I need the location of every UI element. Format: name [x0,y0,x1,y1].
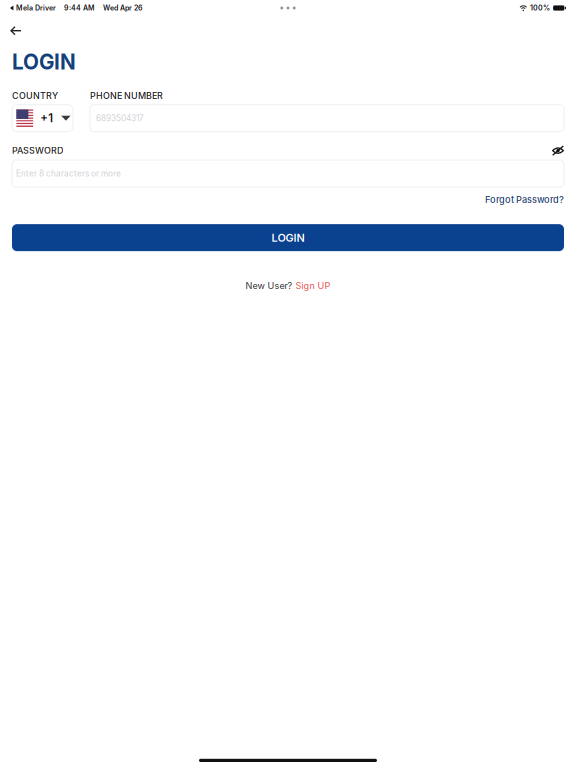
staticText: Forgot Password? [485,194,564,205]
staticText: 6893504317 [96,113,144,123]
staticText: 9:44 AM [64,4,95,12]
staticText: PHONE NUMBER [90,90,163,101]
staticText: PASSWORD [12,145,63,156]
staticText: LOGIN [271,231,304,244]
staticText: Wed Apr 26 [103,4,143,12]
staticText: 100% [530,4,550,12]
staticText: Mela Driver [16,4,56,12]
button[interactable]: LOGIN [12,224,564,251]
button[interactable]: Forgot Password? [485,194,564,205]
button[interactable]: Show password [552,146,564,156]
staticText: Sign UP [295,280,330,291]
staticText: Enter 8 characters or more [16,168,121,178]
button[interactable]: Sign UP [295,280,330,291]
button[interactable]: Enter 8 characters or more [12,160,564,187]
staticText: LOGIN [12,49,76,74]
staticText: +1 [40,111,53,125]
button[interactable]: +1 [12,105,73,132]
button[interactable]: Back [0,24,31,42]
button[interactable]: 6893504317 [90,105,564,132]
staticText: New User? [245,280,295,291]
staticText: COUNTRY [12,90,58,101]
